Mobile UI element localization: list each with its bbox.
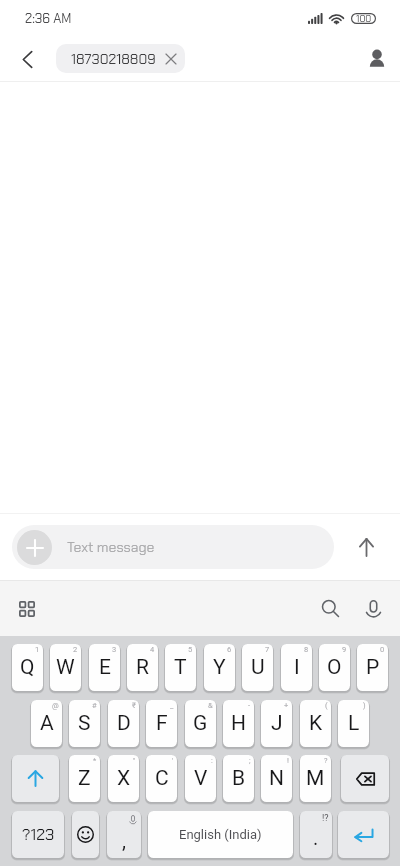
- button[interactable]: V: [185, 755, 216, 804]
- staticText: ;: [249, 756, 251, 765]
- staticText: ": [133, 756, 136, 765]
- staticText: 9: [342, 645, 347, 654]
- staticText: H: [231, 711, 246, 736]
- button[interactable]: 18730218809: [56, 44, 185, 73]
- staticText: P: [366, 655, 380, 680]
- other: Shift: [12, 755, 59, 802]
- staticText: V: [194, 766, 208, 791]
- button[interactable]: Emoji: [72, 811, 99, 860]
- staticText: A: [40, 711, 54, 736]
- staticText: !?: [322, 813, 329, 824]
- button[interactable]: Voice input: [354, 589, 393, 628]
- button[interactable]: S: [69, 700, 100, 749]
- button[interactable]: W: [50, 644, 81, 693]
- button[interactable]: J: [261, 700, 292, 749]
- button[interactable]: .: [300, 811, 332, 860]
- button[interactable]: H: [223, 700, 254, 749]
- staticText: 7: [265, 645, 270, 654]
- staticText: 2: [73, 645, 78, 654]
- staticText: .: [313, 826, 319, 849]
- button[interactable]: I: [281, 644, 312, 693]
- button[interactable]: N: [261, 755, 292, 804]
- staticText: W: [56, 655, 75, 680]
- staticText: @: [52, 701, 59, 710]
- staticText: #: [92, 701, 97, 710]
- button[interactable]: M: [300, 755, 331, 804]
- staticText: &: [208, 701, 213, 710]
- button[interactable]: Y: [204, 644, 235, 693]
- staticText: 1: [35, 645, 40, 654]
- button[interactable]: X: [108, 755, 139, 804]
- staticText: R: [136, 655, 149, 680]
- staticText: 6: [227, 645, 232, 654]
- button[interactable]: Contact details: [357, 39, 397, 79]
- staticText: C: [155, 766, 169, 791]
- staticText: F: [156, 711, 168, 736]
- staticText: 5: [188, 645, 193, 654]
- other: Emoji: [72, 811, 99, 858]
- staticText: Text message: [67, 538, 155, 556]
- staticText: ,: [122, 829, 126, 852]
- staticText: Y: [213, 655, 226, 680]
- button[interactable]: Search: [311, 589, 350, 628]
- button[interactable]: F: [146, 700, 177, 749]
- other: Enter: [338, 811, 389, 858]
- button[interactable]: Keyboard menu: [8, 590, 46, 628]
- button[interactable]: E: [89, 644, 120, 693]
- staticText: O: [327, 655, 342, 680]
- staticText: ?123: [22, 824, 55, 845]
- staticText: English (India): [179, 827, 262, 842]
- button[interactable]: K: [300, 700, 331, 749]
- staticText: ₹: [132, 701, 136, 710]
- staticText: T: [174, 655, 187, 680]
- staticText: :: [211, 756, 213, 765]
- button[interactable]: B: [223, 755, 254, 804]
- button[interactable]: Text message: [12, 525, 334, 569]
- button[interactable]: Back: [8, 40, 46, 78]
- staticText: J: [271, 711, 283, 736]
- staticText: 4: [150, 645, 155, 654]
- button[interactable]: Z: [69, 755, 100, 804]
- button[interactable]: U: [242, 644, 273, 693]
- staticText: 0: [380, 645, 385, 654]
- button[interactable]: English (India): [148, 811, 293, 860]
- button[interactable]: Shift: [12, 755, 59, 804]
- staticText: Q: [20, 655, 35, 680]
- button[interactable]: ,: [107, 811, 141, 860]
- button[interactable]: ?123: [12, 811, 64, 860]
- staticText: _: [170, 701, 174, 710]
- staticText: 2:36 AM: [25, 10, 72, 27]
- staticText: +: [284, 701, 289, 710]
- button[interactable]: Q: [12, 644, 43, 693]
- button[interactable]: A: [31, 700, 62, 749]
- staticText: L: [348, 711, 360, 736]
- staticText: ?: [324, 756, 328, 765]
- button[interactable]: R: [127, 644, 158, 693]
- button[interactable]: L: [338, 700, 369, 749]
- staticText: S: [78, 711, 91, 736]
- staticText: 18730218809: [71, 50, 156, 68]
- staticText: !: [287, 756, 289, 765]
- button[interactable]: O: [319, 644, 350, 693]
- staticText: D: [117, 711, 131, 736]
- staticText: E: [99, 655, 111, 680]
- staticText: 8: [304, 645, 309, 654]
- staticText: U: [251, 655, 265, 680]
- button[interactable]: Enter: [338, 811, 389, 860]
- button[interactable]: Send: [334, 523, 390, 571]
- staticText: 3: [112, 645, 117, 654]
- staticText: B: [232, 766, 246, 791]
- staticText: M: [306, 766, 325, 791]
- staticText: ): [363, 701, 366, 710]
- staticText: Z: [78, 766, 91, 791]
- button[interactable]: C: [146, 755, 177, 804]
- staticText: X: [117, 766, 131, 791]
- button[interactable]: P: [357, 644, 388, 693]
- button[interactable]: D: [108, 700, 139, 749]
- button[interactable]: G: [185, 700, 216, 749]
- staticText: ': [172, 756, 174, 765]
- staticText: K: [309, 711, 323, 736]
- button[interactable]: Backspace: [341, 755, 389, 804]
- staticText: G: [193, 711, 208, 736]
- button[interactable]: T: [165, 644, 196, 693]
